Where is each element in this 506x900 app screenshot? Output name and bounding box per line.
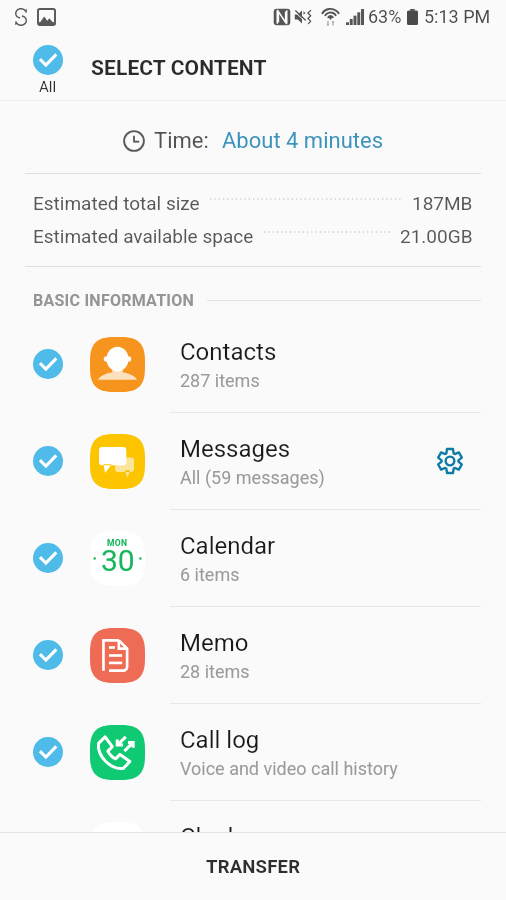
staticText: Call log (180, 726, 260, 754)
staticText: Time: (154, 128, 209, 154)
staticText: 5:13 PM (424, 6, 491, 27)
staticText: About 4 minutes (222, 128, 383, 154)
staticText: 6 items (180, 564, 240, 585)
button[interactable]: TRANSFER (0, 833, 506, 900)
button[interactable]: Contacts (0, 316, 506, 412)
staticText: Estimated total size (33, 192, 200, 214)
staticText: All (59 messages) (180, 467, 325, 488)
button[interactable]: Call log (0, 704, 506, 800)
staticText: 21.00GB (400, 225, 473, 247)
staticText: All (39, 78, 57, 96)
staticText: 187MB (412, 192, 473, 214)
staticText: Estimated available space (33, 225, 254, 247)
staticText: MON (107, 538, 128, 548)
button[interactable]: All (33, 36, 63, 96)
button[interactable]: Memo (0, 607, 506, 703)
staticText: SELECT CONTENT (91, 56, 267, 81)
staticText: Contacts (180, 338, 277, 366)
staticText: Clock (180, 823, 240, 851)
staticText: Calendar (180, 532, 276, 560)
button[interactable]: Clock (0, 801, 506, 897)
staticText: BASIC INFORMATION (33, 291, 195, 310)
staticText: Messages (180, 435, 291, 463)
staticText: TRANSFER (206, 856, 301, 878)
staticText: Memo (180, 629, 249, 657)
staticText: Voice and video call history (180, 758, 398, 779)
staticText: 3 items (180, 855, 240, 876)
button[interactable]: MON (0, 510, 506, 606)
button[interactable]: Messages (0, 413, 506, 509)
button[interactable]: Message settings (424, 435, 476, 487)
staticText: 63% (368, 6, 402, 27)
staticText: 28 items (180, 661, 250, 682)
staticText: 287 items (180, 370, 260, 391)
staticText: 30 (101, 543, 135, 578)
